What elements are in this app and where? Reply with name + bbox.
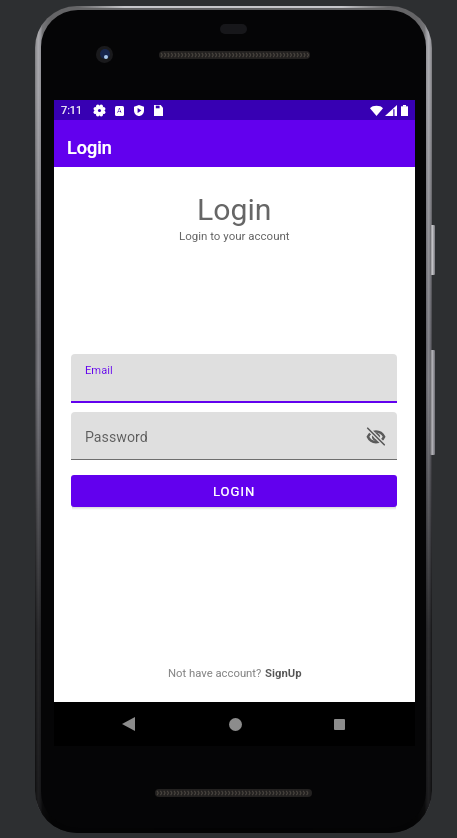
staticText: Login to your account [179,229,290,242]
button[interactable]: Password [71,412,397,460]
button[interactable]: LOGIN [71,475,397,507]
button[interactable]: Back [113,709,143,739]
staticText: Login [67,137,112,158]
staticText: A [117,107,122,115]
staticText: Not have account? [168,667,265,680]
staticText: Password [85,429,148,446]
button[interactable]: Not have account? [168,667,302,680]
staticText: 7:11 [61,104,83,117]
button[interactable]: Home [220,709,250,739]
button[interactable]: Email [71,354,397,403]
staticText: Login [197,192,272,227]
staticText: SignUp [265,667,302,680]
button[interactable]: Toggle password visibility [364,424,388,448]
staticText: Email [85,364,113,377]
button[interactable]: Recent apps [324,709,354,739]
staticText: LOGIN [213,484,256,499]
